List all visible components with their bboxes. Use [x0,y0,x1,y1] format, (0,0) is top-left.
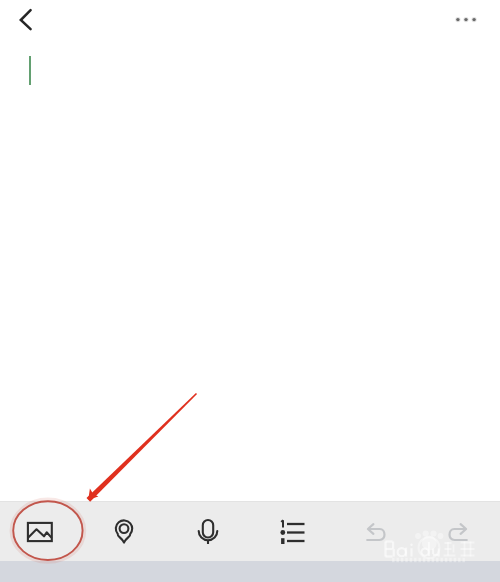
button[interactable]: Voice input [190,512,226,548]
button[interactable]: Back [4,2,42,40]
button[interactable]: Location [106,512,142,548]
button[interactable]: More options [440,4,486,36]
button[interactable]: Insert image [22,512,58,548]
button[interactable]: List format [278,512,314,548]
button[interactable]: Undo [361,512,397,548]
button[interactable]: Redo [437,512,473,548]
